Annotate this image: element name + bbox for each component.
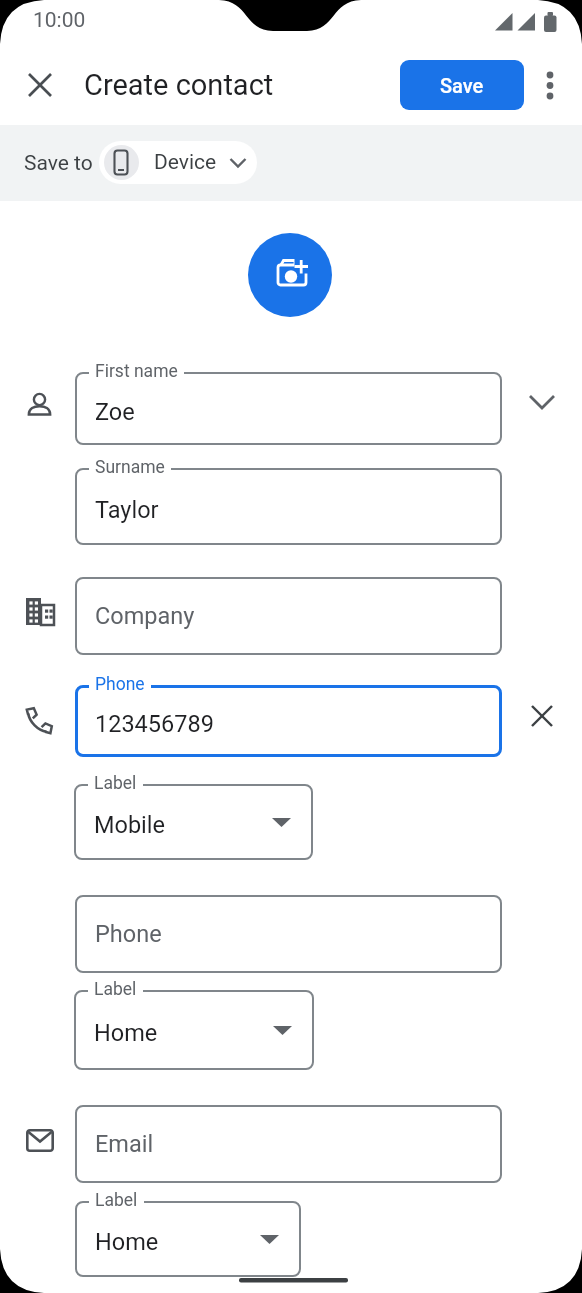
staticText: Home bbox=[95, 1228, 159, 1256]
button[interactable]: Zoe bbox=[75, 372, 502, 445]
button[interactable]: Home bbox=[74, 990, 314, 1070]
button[interactable]: Save bbox=[400, 60, 524, 110]
staticText: Create contact bbox=[84, 68, 274, 102]
staticText: Zoe bbox=[95, 398, 135, 426]
staticText: Taylor bbox=[95, 496, 159, 524]
button[interactable] bbox=[248, 233, 332, 317]
staticText: Home bbox=[94, 1019, 158, 1047]
button[interactable]: Email bbox=[75, 1105, 502, 1183]
staticText: Label bbox=[94, 773, 137, 794]
button[interactable]: Home bbox=[75, 1201, 301, 1277]
button[interactable]: Mobile bbox=[74, 784, 313, 860]
staticText: Save bbox=[440, 74, 484, 97]
staticText: 123456789 bbox=[95, 710, 214, 738]
button[interactable]: Company bbox=[75, 577, 502, 655]
button[interactable]: 123456789 bbox=[75, 685, 502, 757]
button[interactable] bbox=[24, 69, 56, 101]
staticText: Phone bbox=[95, 674, 145, 695]
staticText: Surname bbox=[95, 457, 165, 478]
staticText: Mobile bbox=[94, 811, 166, 839]
button[interactable] bbox=[536, 71, 564, 99]
staticText: 10:00 bbox=[33, 8, 86, 33]
staticText: Company bbox=[95, 602, 195, 630]
staticText: Phone bbox=[95, 920, 162, 948]
staticText: First name bbox=[95, 361, 178, 382]
staticText: Email bbox=[95, 1130, 154, 1158]
staticText: Device bbox=[154, 150, 217, 175]
staticText: Label bbox=[94, 979, 137, 1000]
button[interactable]: Phone bbox=[75, 895, 502, 973]
button[interactable] bbox=[529, 703, 555, 729]
button[interactable]: Taylor bbox=[75, 468, 502, 545]
button[interactable] bbox=[526, 388, 558, 416]
button[interactable]: Device bbox=[99, 141, 257, 184]
staticText: Label bbox=[95, 1190, 138, 1211]
staticText: Save to bbox=[24, 151, 93, 176]
